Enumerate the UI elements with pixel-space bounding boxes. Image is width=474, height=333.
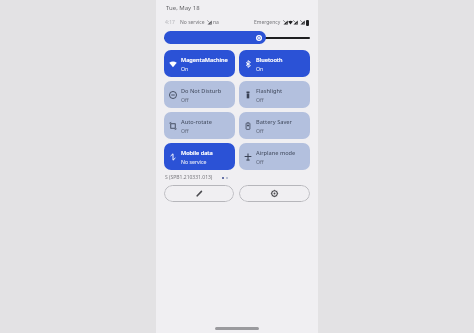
staticText: Battery Saver <box>256 118 292 126</box>
staticText: Off <box>256 127 264 134</box>
staticText: Airplane mode <box>256 149 296 157</box>
staticText: On <box>181 65 189 72</box>
staticText: Mobile data <box>181 149 213 157</box>
staticText: Flashlight <box>256 87 283 95</box>
staticText: S (SPB1.210331.013) <box>165 174 213 181</box>
button[interactable]: Airplane mode <box>239 143 310 170</box>
staticText: Off <box>256 96 264 103</box>
staticText: No service <box>181 158 207 165</box>
staticText: No service <box>180 19 205 26</box>
staticText: On <box>256 65 264 72</box>
staticText: na <box>213 19 219 26</box>
staticText: Do Not Disturb <box>181 87 222 95</box>
button[interactable]: Settings <box>239 185 310 202</box>
button[interactable]: Flashlight <box>239 81 310 108</box>
button[interactable]: Bluetooth <box>239 50 310 77</box>
button[interactable]: Auto-rotate <box>164 112 235 139</box>
staticText: Emergency <box>254 19 281 26</box>
button[interactable]: Mobile data <box>164 143 235 170</box>
staticText: Tue, May 18 <box>166 4 200 12</box>
staticText: MagentaMachine <box>181 56 228 64</box>
staticText: 4:17 <box>165 19 175 26</box>
button[interactable]: Do Not Disturb <box>164 81 235 108</box>
button[interactable]: MagentaMachine <box>164 50 235 77</box>
staticText: Off <box>181 127 189 134</box>
staticText: Off <box>181 96 189 103</box>
button[interactable]: Edit tiles <box>164 185 234 202</box>
staticText: Off <box>256 158 264 165</box>
button[interactable]: Battery Saver <box>239 112 310 139</box>
staticText: Auto-rotate <box>181 118 212 126</box>
staticText: Bluetooth <box>256 56 283 64</box>
button[interactable]: Brightness <box>164 31 310 44</box>
